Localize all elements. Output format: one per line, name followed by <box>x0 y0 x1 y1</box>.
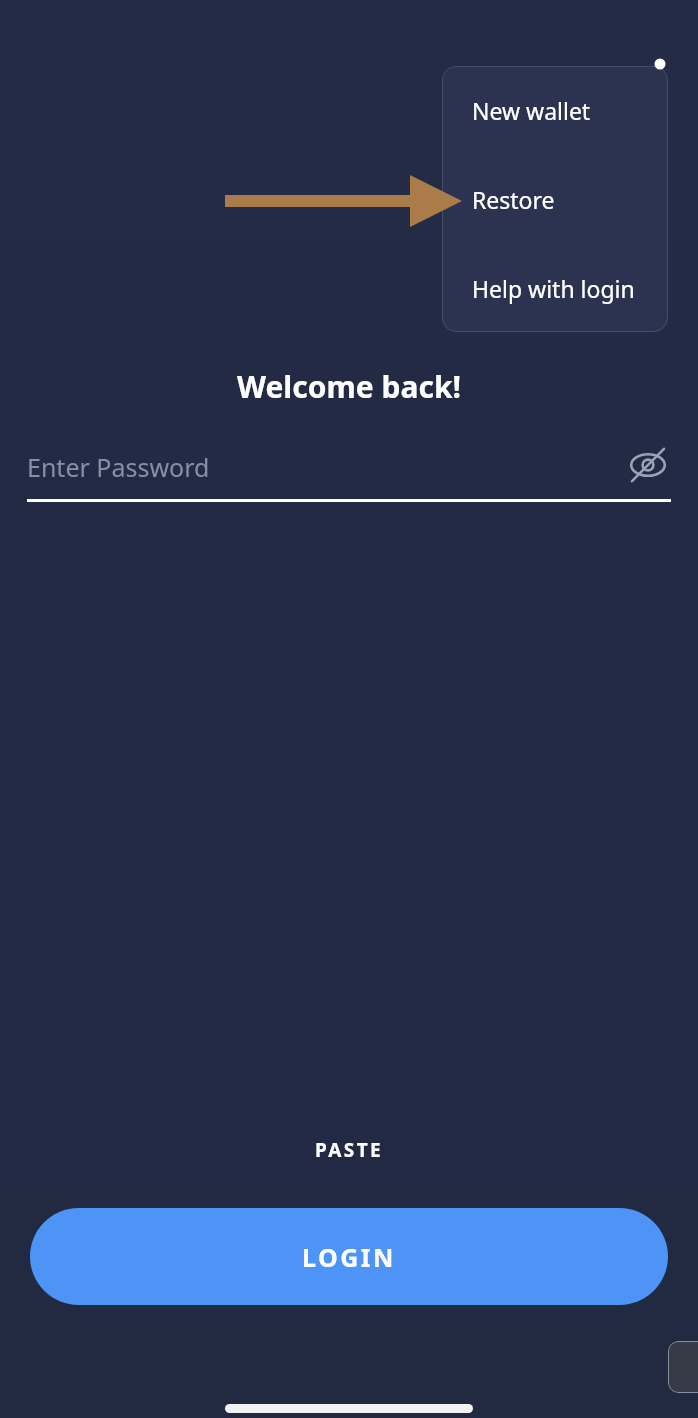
staticText: Help with login <box>472 273 635 304</box>
staticText: PASTE <box>315 1137 384 1163</box>
staticText: Enter Password <box>27 450 210 484</box>
button[interactable]: Help with login <box>442 244 668 332</box>
button[interactable]: Enter Password <box>27 440 671 502</box>
button[interactable]: Show password <box>625 442 671 488</box>
staticText: LOGIN <box>302 1240 396 1274</box>
staticText: Restore <box>472 184 555 215</box>
button[interactable]: New wallet <box>442 66 668 155</box>
button[interactable]: Restore <box>442 155 668 244</box>
staticText: New wallet <box>472 95 591 126</box>
staticText: Welcome back! <box>0 366 698 407</box>
button[interactable]: PASTE <box>0 1128 698 1172</box>
button[interactable]: LOGIN <box>30 1208 668 1305</box>
